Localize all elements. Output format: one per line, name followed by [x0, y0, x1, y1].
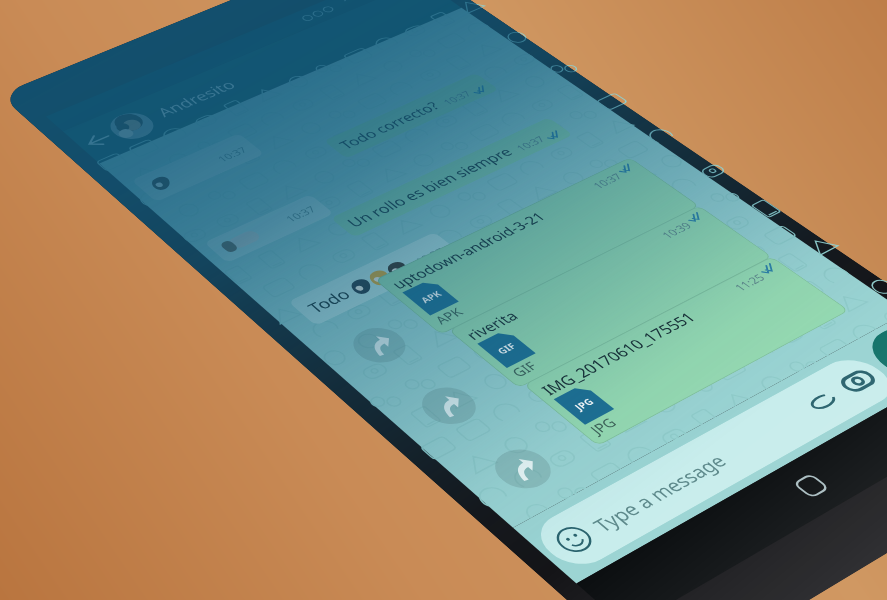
- button[interactable]: Forward: [484, 442, 562, 496]
- button[interactable]: 10:37: [131, 133, 265, 202]
- staticText: GIF: [507, 358, 542, 380]
- button[interactable]: riverita: [448, 205, 772, 388]
- button[interactable]: Emoji: [526, 352, 887, 574]
- staticText: Andresito: [152, 76, 240, 120]
- staticText: Un rollo es bien siempre: [342, 144, 517, 231]
- other: Attach: [798, 385, 847, 417]
- button[interactable]: Voice message: [857, 319, 887, 386]
- staticText: 10:39: [658, 219, 695, 241]
- other: Emoji: [549, 522, 599, 557]
- staticText: Todo: [302, 283, 360, 317]
- button[interactable]: 10:37: [204, 194, 334, 263]
- staticText: riverita: [461, 307, 522, 343]
- staticText: Todo correcto?: [335, 98, 444, 152]
- button[interactable]: Un rollo es bien siempre: [330, 117, 573, 237]
- other: Camera: [834, 365, 882, 397]
- staticText: 10:37: [411, 245, 449, 267]
- button[interactable]: Back: [71, 124, 125, 157]
- staticText: JPG: [571, 395, 597, 413]
- button[interactable]: IMG_20170610_175551: [523, 256, 849, 446]
- button[interactable]: uptodown-android-3-21: [374, 157, 700, 335]
- staticText: APK: [430, 304, 467, 327]
- staticText: IMG_20170610_175551: [536, 308, 700, 398]
- button[interactable]: Forward: [411, 380, 487, 431]
- staticText: 10:37: [282, 203, 319, 224]
- staticText: APK: [417, 288, 445, 305]
- staticText: GIF: [494, 340, 519, 357]
- staticText: 10:37: [512, 133, 548, 153]
- staticText: 10:37: [439, 88, 474, 107]
- button[interactable]: Home: [785, 469, 836, 503]
- button[interactable]: Todo: [288, 232, 463, 326]
- staticText: 10:37: [214, 144, 250, 164]
- staticText: uptodown-android-3-21: [386, 209, 549, 292]
- button[interactable]: Todo correcto?: [323, 73, 499, 159]
- staticText: 11:25: [730, 271, 768, 293]
- staticText: Type a message: [586, 449, 733, 537]
- staticText: JPG: [585, 414, 621, 438]
- staticText: 10:37: [589, 170, 625, 191]
- button[interactable]: Forward: [343, 321, 416, 369]
